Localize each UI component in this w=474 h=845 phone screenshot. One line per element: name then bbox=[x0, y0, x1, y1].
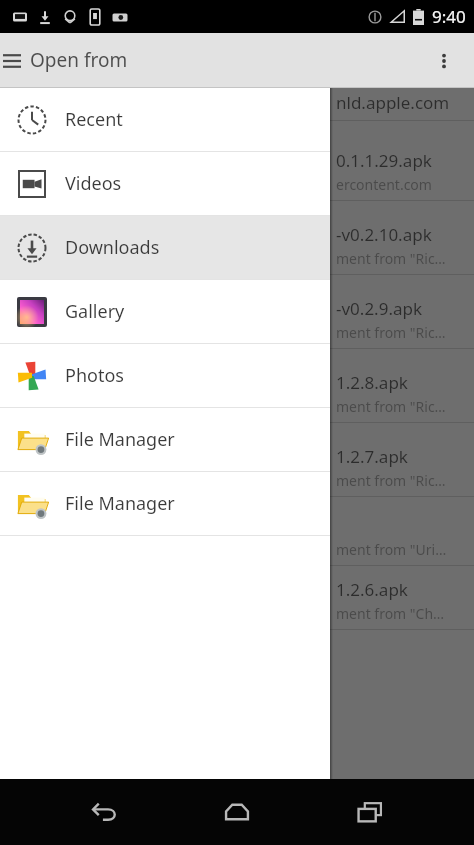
staticText: Recent bbox=[65, 107, 123, 132]
staticText: 0.1.1.29.apk bbox=[336, 149, 432, 172]
button[interactable]: Open navigation drawer bbox=[0, 41, 32, 81]
staticText: Photos bbox=[65, 363, 124, 388]
staticText: 1.2.7.apk bbox=[336, 445, 408, 468]
button[interactable]: Recent apps bbox=[342, 784, 398, 840]
staticText: ment from "Ch… bbox=[336, 604, 445, 623]
staticText: -v0.2.10.apk bbox=[336, 223, 432, 246]
staticText: -v0.2.9.apk bbox=[336, 297, 423, 320]
staticText: Gallery bbox=[65, 299, 125, 324]
button[interactable]: File Manager bbox=[0, 408, 330, 471]
staticText: File Manager bbox=[65, 491, 175, 516]
button[interactable]: Photos bbox=[0, 344, 330, 407]
staticText: 1.2.6.apk bbox=[336, 578, 408, 601]
staticText: Open from bbox=[30, 47, 128, 73]
staticText: nld.apple.com bbox=[336, 91, 450, 114]
staticText: File Manager bbox=[65, 427, 175, 452]
staticText: 9:40 bbox=[432, 5, 466, 28]
staticText: ment from "Ric… bbox=[336, 397, 446, 416]
staticText: Downloads bbox=[65, 235, 160, 260]
staticText: 1.2.8.apk bbox=[336, 371, 408, 394]
staticText: ment from "Ric… bbox=[336, 471, 446, 490]
staticText: ercontent.com bbox=[336, 175, 432, 194]
button[interactable]: Downloads bbox=[0, 216, 330, 279]
staticText: ment from "Ric… bbox=[336, 249, 446, 268]
staticText: ment from "Ric… bbox=[336, 323, 446, 342]
staticText: ment from "Uri… bbox=[336, 540, 447, 559]
button[interactable]: Recent bbox=[0, 88, 330, 151]
button[interactable]: Gallery bbox=[0, 280, 330, 343]
button[interactable]: Back bbox=[77, 784, 133, 840]
staticText: Videos bbox=[65, 171, 122, 196]
button[interactable]: Videos bbox=[0, 152, 330, 215]
button[interactable]: File Manager bbox=[0, 472, 330, 535]
button[interactable]: Home bbox=[209, 784, 265, 840]
button[interactable]: More options bbox=[424, 41, 464, 81]
